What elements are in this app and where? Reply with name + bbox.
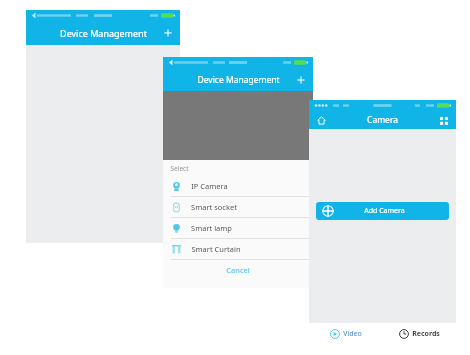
staticText: Device Management bbox=[60, 27, 147, 39]
staticText: Camera bbox=[367, 114, 398, 126]
button[interactable]: Records bbox=[382, 323, 456, 345]
staticText: IP Camera bbox=[191, 181, 228, 191]
staticText: Cancel bbox=[226, 265, 250, 275]
staticText: Records bbox=[412, 329, 440, 339]
button[interactable]: Smart Curtain bbox=[163, 239, 313, 259]
button[interactable]: Smart lamp bbox=[163, 218, 313, 238]
staticText: Video bbox=[343, 329, 362, 339]
button[interactable]: Add device bbox=[294, 73, 308, 87]
staticText: Add Camera bbox=[364, 206, 405, 216]
button[interactable]: IP Camera bbox=[163, 176, 313, 196]
staticText: Device Management bbox=[197, 74, 280, 86]
staticText: Select bbox=[170, 164, 189, 173]
staticText: Smart lamp bbox=[191, 223, 232, 233]
button[interactable]: Smart socket bbox=[163, 197, 313, 217]
button[interactable]: Video bbox=[309, 323, 382, 345]
staticText: Smart Curtain bbox=[191, 244, 241, 254]
button[interactable]: Cancel bbox=[163, 260, 313, 280]
button[interactable]: Add Camera bbox=[316, 202, 449, 220]
button[interactable]: Add device bbox=[161, 26, 175, 40]
staticText: Smart socket bbox=[191, 202, 237, 212]
button[interactable]: Settings bbox=[437, 114, 450, 127]
button[interactable]: Home bbox=[315, 114, 328, 127]
